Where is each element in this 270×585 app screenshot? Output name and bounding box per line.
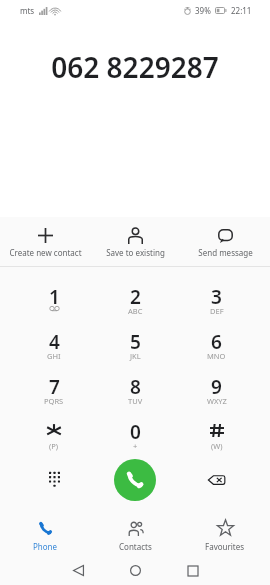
staticText: 4 xyxy=(49,329,60,351)
staticText: WXYZ xyxy=(207,396,227,406)
staticText: Contacts xyxy=(119,541,152,552)
staticText: 1 xyxy=(49,284,60,306)
staticText: GHI xyxy=(47,351,61,361)
staticText: Favourites xyxy=(205,541,245,552)
staticText: ABC xyxy=(128,306,143,316)
staticText: JKL xyxy=(130,351,141,361)
button[interactable]: 9 xyxy=(176,374,257,419)
staticText: Send message xyxy=(198,247,253,258)
staticText: 22:11 xyxy=(231,5,252,16)
staticText: + xyxy=(133,441,138,451)
staticText: 9 xyxy=(211,374,222,396)
staticText: 39% xyxy=(195,5,211,16)
staticText: 062 8229287 xyxy=(0,48,270,86)
staticText: 3 xyxy=(211,284,222,306)
button[interactable]: Phone xyxy=(0,518,90,552)
button[interactable]: Save to existing xyxy=(90,225,180,265)
staticText: 5 xyxy=(130,329,141,351)
staticText: mts xyxy=(20,5,35,16)
button[interactable]: Favourites xyxy=(180,518,270,552)
button[interactable]: (P) xyxy=(13,419,95,464)
button[interactable]: 1 xyxy=(13,284,95,329)
button[interactable]: 2 xyxy=(95,284,176,329)
staticText: PQRS xyxy=(44,396,64,406)
button[interactable]: Create new contact xyxy=(0,225,90,265)
staticText: Phone xyxy=(33,541,58,552)
button[interactable]: Send message xyxy=(180,225,270,265)
button[interactable]: 5 xyxy=(95,329,176,374)
button[interactable]: 4 xyxy=(13,329,95,374)
staticText: (P) xyxy=(49,441,59,451)
staticText: 7 xyxy=(49,374,60,396)
button[interactable]: Contacts xyxy=(90,518,180,552)
staticText: Save to existing xyxy=(106,247,165,258)
staticText: DEF xyxy=(210,306,224,316)
button[interactable]: Back xyxy=(49,557,107,584)
button[interactable]: Call xyxy=(114,459,156,501)
button[interactable]: 7 xyxy=(13,374,95,419)
staticText: 8 xyxy=(130,374,141,396)
button[interactable]: Delete xyxy=(186,459,246,501)
button[interactable]: (W) xyxy=(176,419,257,464)
staticText: 2 xyxy=(130,284,141,306)
staticText: (W) xyxy=(211,441,223,451)
staticText: TUV xyxy=(128,396,143,406)
button[interactable]: Recent apps xyxy=(164,557,221,584)
button[interactable]: 6 xyxy=(176,329,257,374)
button[interactable]: 3 xyxy=(176,284,257,329)
staticText: 6 xyxy=(211,329,222,351)
button[interactable]: 8 xyxy=(95,374,176,419)
staticText: Create new contact xyxy=(9,247,82,258)
button[interactable]: 0 xyxy=(95,419,176,464)
button[interactable]: Show dialpad xyxy=(24,457,84,499)
button[interactable]: Home xyxy=(107,557,164,584)
staticText: 0 xyxy=(130,419,141,441)
staticText: MNO xyxy=(207,351,226,361)
